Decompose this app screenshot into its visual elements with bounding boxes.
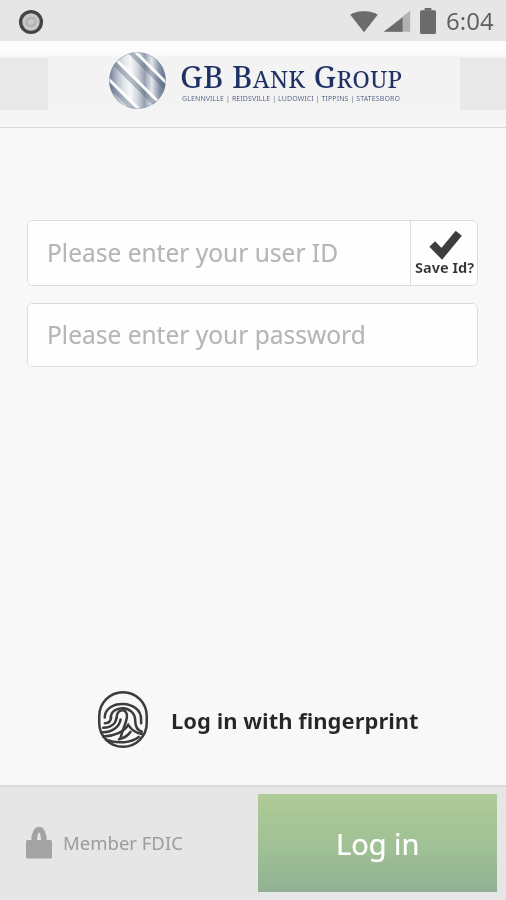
other: Secure — [26, 823, 52, 860]
other: Signal — [383, 9, 411, 33]
staticText: Please enter your user ID — [47, 236, 339, 269]
staticText: Please enter your password — [47, 318, 366, 351]
button[interactable]: Secure — [26, 824, 183, 861]
other: Wi-Fi — [350, 9, 378, 33]
button[interactable]: Log in with fingerprint — [0, 691, 506, 748]
other: Notification — [17, 8, 45, 36]
staticText: Member FDIC — [63, 830, 183, 855]
staticText: GLENNVILLE | REIDSVILLE | LUDOWICI | TIP… — [182, 94, 401, 104]
button[interactable]: Log in — [258, 794, 497, 892]
staticText: GB BANK GROUP — [180, 55, 403, 97]
button[interactable]: Please enter your user ID — [27, 220, 478, 286]
staticText: 6:04 — [446, 4, 494, 37]
staticText: Save Id? — [415, 257, 475, 277]
button[interactable]: Save Id — [411, 220, 478, 286]
other: Battery — [420, 8, 436, 34]
staticText: Log in — [336, 824, 420, 863]
staticText: Log in with fingerprint — [171, 705, 419, 735]
button[interactable]: Please enter your password — [27, 303, 478, 367]
